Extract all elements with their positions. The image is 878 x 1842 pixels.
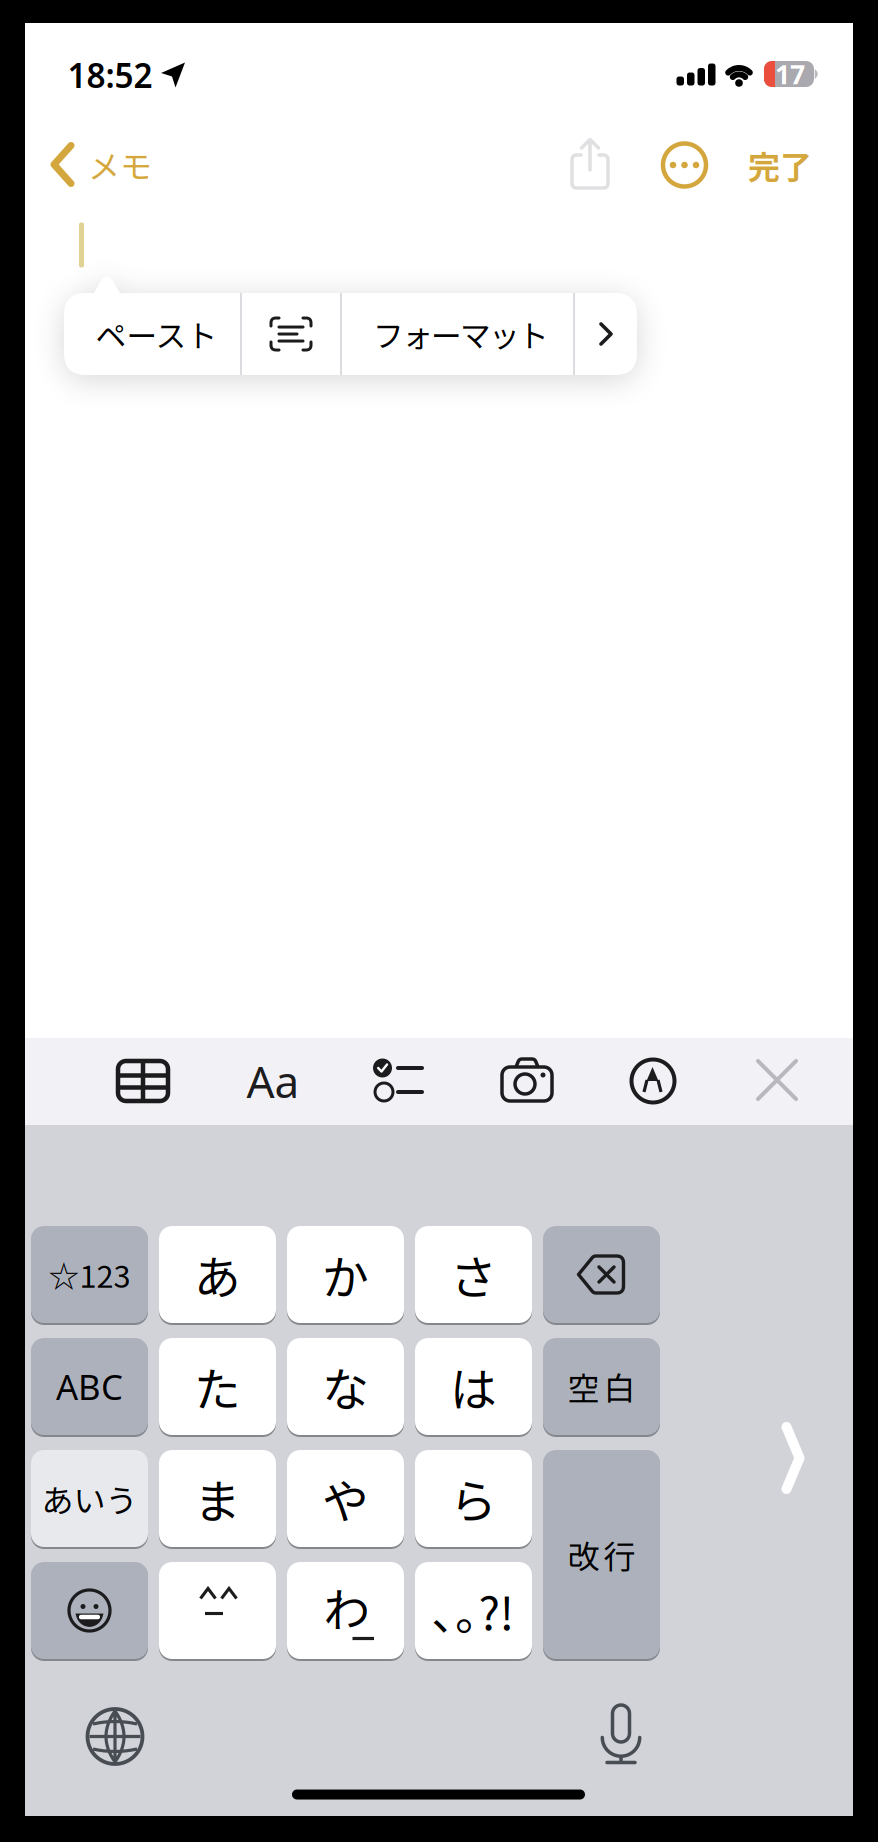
staticText: ペースト — [95, 312, 217, 356]
button[interactable]: な — [287, 1337, 404, 1436]
staticText: 完了 — [748, 142, 812, 188]
staticText: あ — [194, 1241, 241, 1308]
button[interactable]: 改行 — [543, 1449, 660, 1660]
button[interactable]: キーボードを閉じる — [756, 1059, 798, 1101]
button[interactable]: ペースト — [95, 312, 217, 356]
staticText: ☆123 — [48, 1252, 130, 1297]
staticText: 空白 — [567, 1363, 635, 1410]
staticText: さ — [450, 1241, 497, 1308]
staticText: あいう — [41, 1475, 137, 1522]
button[interactable]: カメラ — [501, 1059, 553, 1103]
button[interactable]: た — [159, 1337, 276, 1436]
button[interactable]: あ — [159, 1225, 276, 1324]
button[interactable]: 共有 — [566, 138, 614, 190]
staticText: は — [450, 1353, 497, 1420]
staticText: ABC — [56, 1363, 123, 1409]
button[interactable]: わ — [287, 1561, 404, 1660]
button[interactable]: 空白 — [543, 1337, 660, 1436]
button[interactable]: 表 — [118, 1061, 168, 1101]
button[interactable]: さ — [415, 1225, 532, 1324]
staticText: か — [322, 1241, 369, 1308]
button[interactable]: 絵文字 — [31, 1561, 148, 1660]
button[interactable]: か — [287, 1225, 404, 1324]
button[interactable]: テキストをスキャン — [269, 316, 313, 352]
button[interactable]: メモ — [46, 136, 166, 192]
button[interactable]: カーソルを移動 — [784, 1425, 801, 1491]
staticText: フォーマット — [373, 312, 549, 356]
staticText: ､｡?! — [432, 1578, 514, 1643]
button[interactable]: 次のキーボード — [87, 1709, 142, 1764]
staticText: や — [322, 1465, 369, 1532]
staticText: 改行 — [567, 1531, 635, 1578]
staticText: た — [194, 1353, 241, 1420]
button[interactable]: フォーマット — [373, 312, 549, 356]
staticText: 17 — [775, 56, 805, 92]
staticText: Aa — [246, 1052, 299, 1110]
staticText: わ — [323, 1573, 370, 1641]
button[interactable]: チェックリスト — [372, 1059, 424, 1101]
button[interactable]: 音声入力 — [599, 1704, 643, 1762]
button[interactable]: 英字 — [31, 1337, 148, 1436]
staticText: な — [322, 1353, 369, 1420]
button[interactable]: ま — [159, 1449, 276, 1548]
staticText: 18:52 — [67, 53, 152, 97]
staticText: ま — [194, 1465, 241, 1532]
staticText: メモ — [88, 141, 152, 188]
button[interactable]: マークアップ — [631, 1059, 675, 1103]
button[interactable]: その他 — [663, 143, 706, 186]
button[interactable]: や — [287, 1449, 404, 1548]
button[interactable]: かな — [31, 1449, 148, 1548]
staticText: ら — [450, 1465, 497, 1532]
button[interactable]: その他の項目 — [599, 322, 613, 346]
button[interactable]: カオモジ — [159, 1561, 276, 1660]
button[interactable]: 削除 — [543, 1225, 660, 1324]
button[interactable]: ､｡?! — [415, 1561, 532, 1660]
button[interactable]: 完了 — [748, 142, 812, 188]
button[interactable]: ら — [415, 1449, 532, 1548]
button[interactable]: 数字 — [31, 1225, 148, 1324]
button[interactable]: 書式 — [246, 1052, 299, 1110]
button[interactable]: は — [415, 1337, 532, 1436]
